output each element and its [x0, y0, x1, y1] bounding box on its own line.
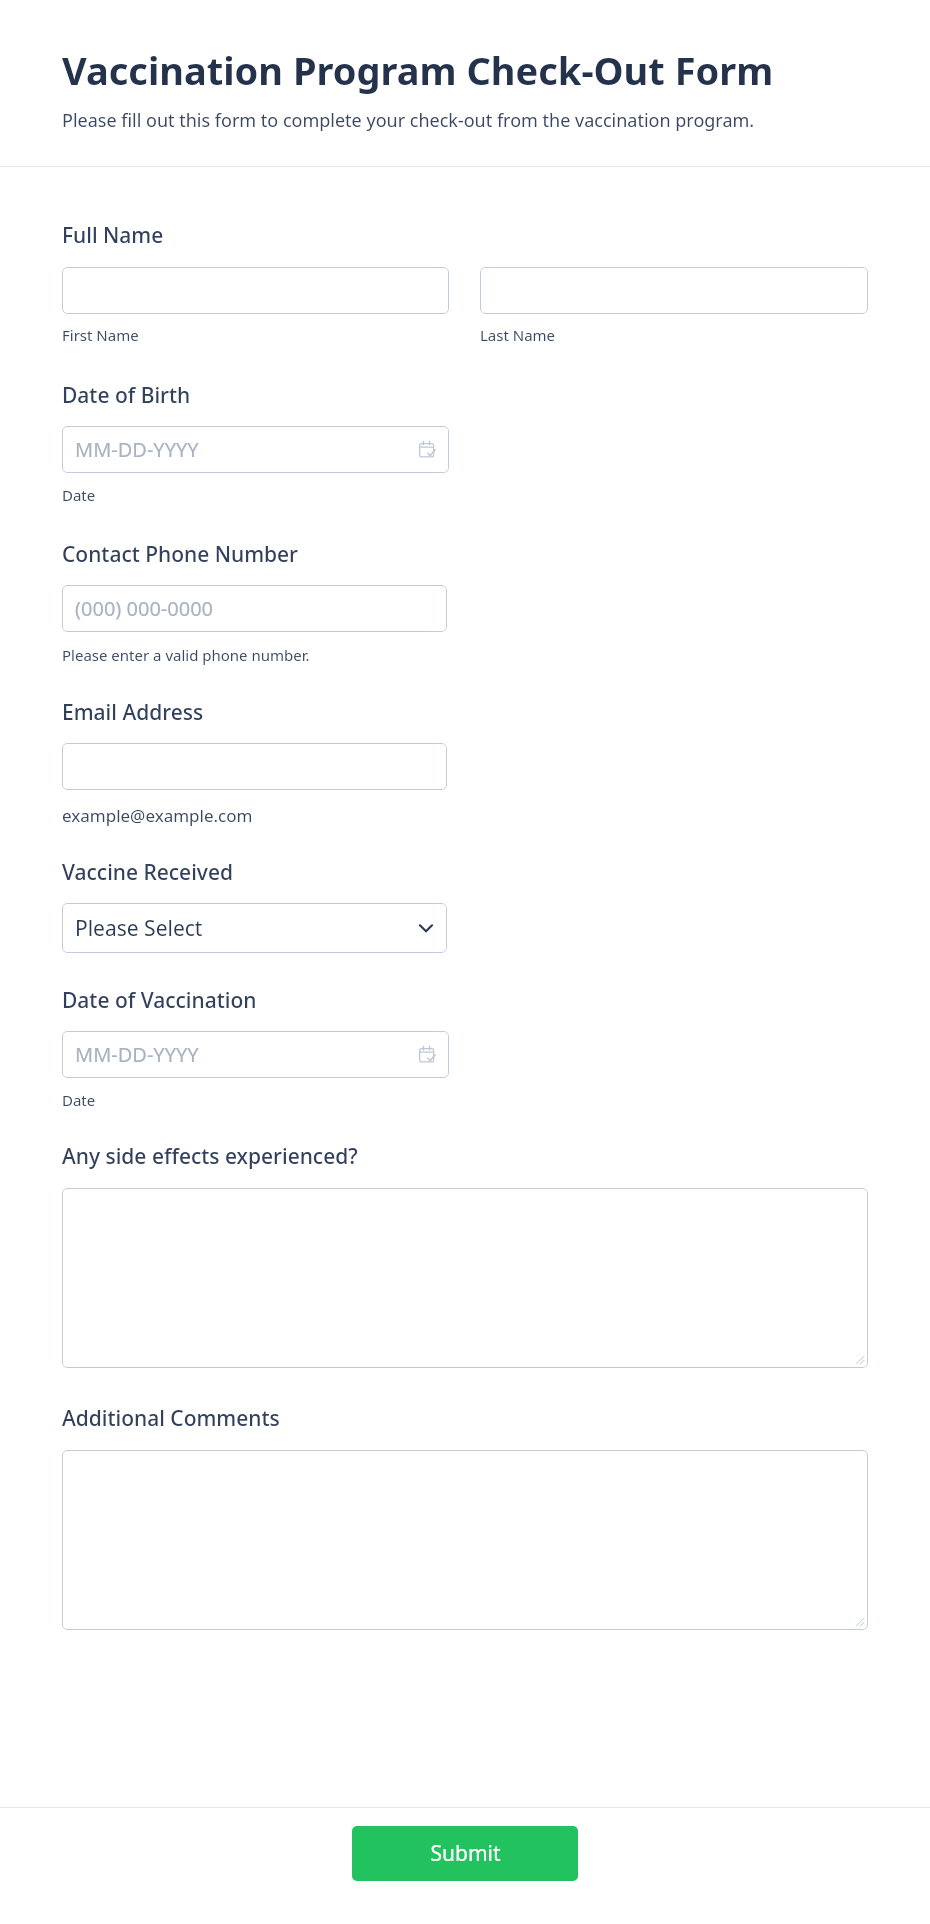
staticText: Last Name — [480, 325, 556, 345]
staticText: Please enter a valid phone number. — [62, 645, 310, 665]
button[interactable]: MM-DD-YYYY — [62, 1031, 449, 1078]
button[interactable]: Please Select — [62, 903, 447, 953]
staticText: Additional Comments — [62, 1404, 280, 1433]
staticText: Date of Birth — [62, 381, 191, 410]
other: Pick date — [419, 1046, 436, 1063]
staticText: Date of Vaccination — [62, 986, 257, 1015]
staticText: Vaccination Program Check-Out Form — [62, 44, 774, 96]
button[interactable]: Submit — [352, 1826, 578, 1881]
staticText: Date — [62, 1090, 96, 1110]
staticText: Full Name — [62, 221, 164, 250]
button[interactable] — [480, 267, 868, 314]
staticText: Submit — [430, 1839, 501, 1868]
staticText: Any side effects experienced? — [62, 1142, 358, 1171]
staticText: Email Address — [62, 698, 204, 727]
staticText: Please fill out this form to complete yo… — [62, 108, 755, 133]
staticText: Contact Phone Number — [62, 540, 298, 569]
staticText: Date — [62, 485, 96, 505]
button[interactable] — [62, 1450, 868, 1630]
button[interactable] — [62, 1188, 868, 1368]
button[interactable] — [62, 267, 449, 314]
button[interactable]: MM-DD-YYYY — [62, 426, 449, 473]
staticText: Please Select — [75, 914, 203, 943]
staticText: Vaccine Received — [62, 858, 233, 887]
staticText: MM-DD-YYYY — [75, 1041, 199, 1068]
staticText: example@example.com — [62, 804, 253, 827]
other: Pick date — [419, 441, 436, 458]
staticText: First Name — [62, 325, 139, 345]
staticText: MM-DD-YYYY — [75, 436, 199, 463]
button[interactable] — [62, 743, 447, 790]
button[interactable]: (000) 000-0000 — [62, 585, 447, 632]
staticText: (000) 000-0000 — [75, 595, 214, 622]
other: Open dropdown — [418, 920, 434, 936]
